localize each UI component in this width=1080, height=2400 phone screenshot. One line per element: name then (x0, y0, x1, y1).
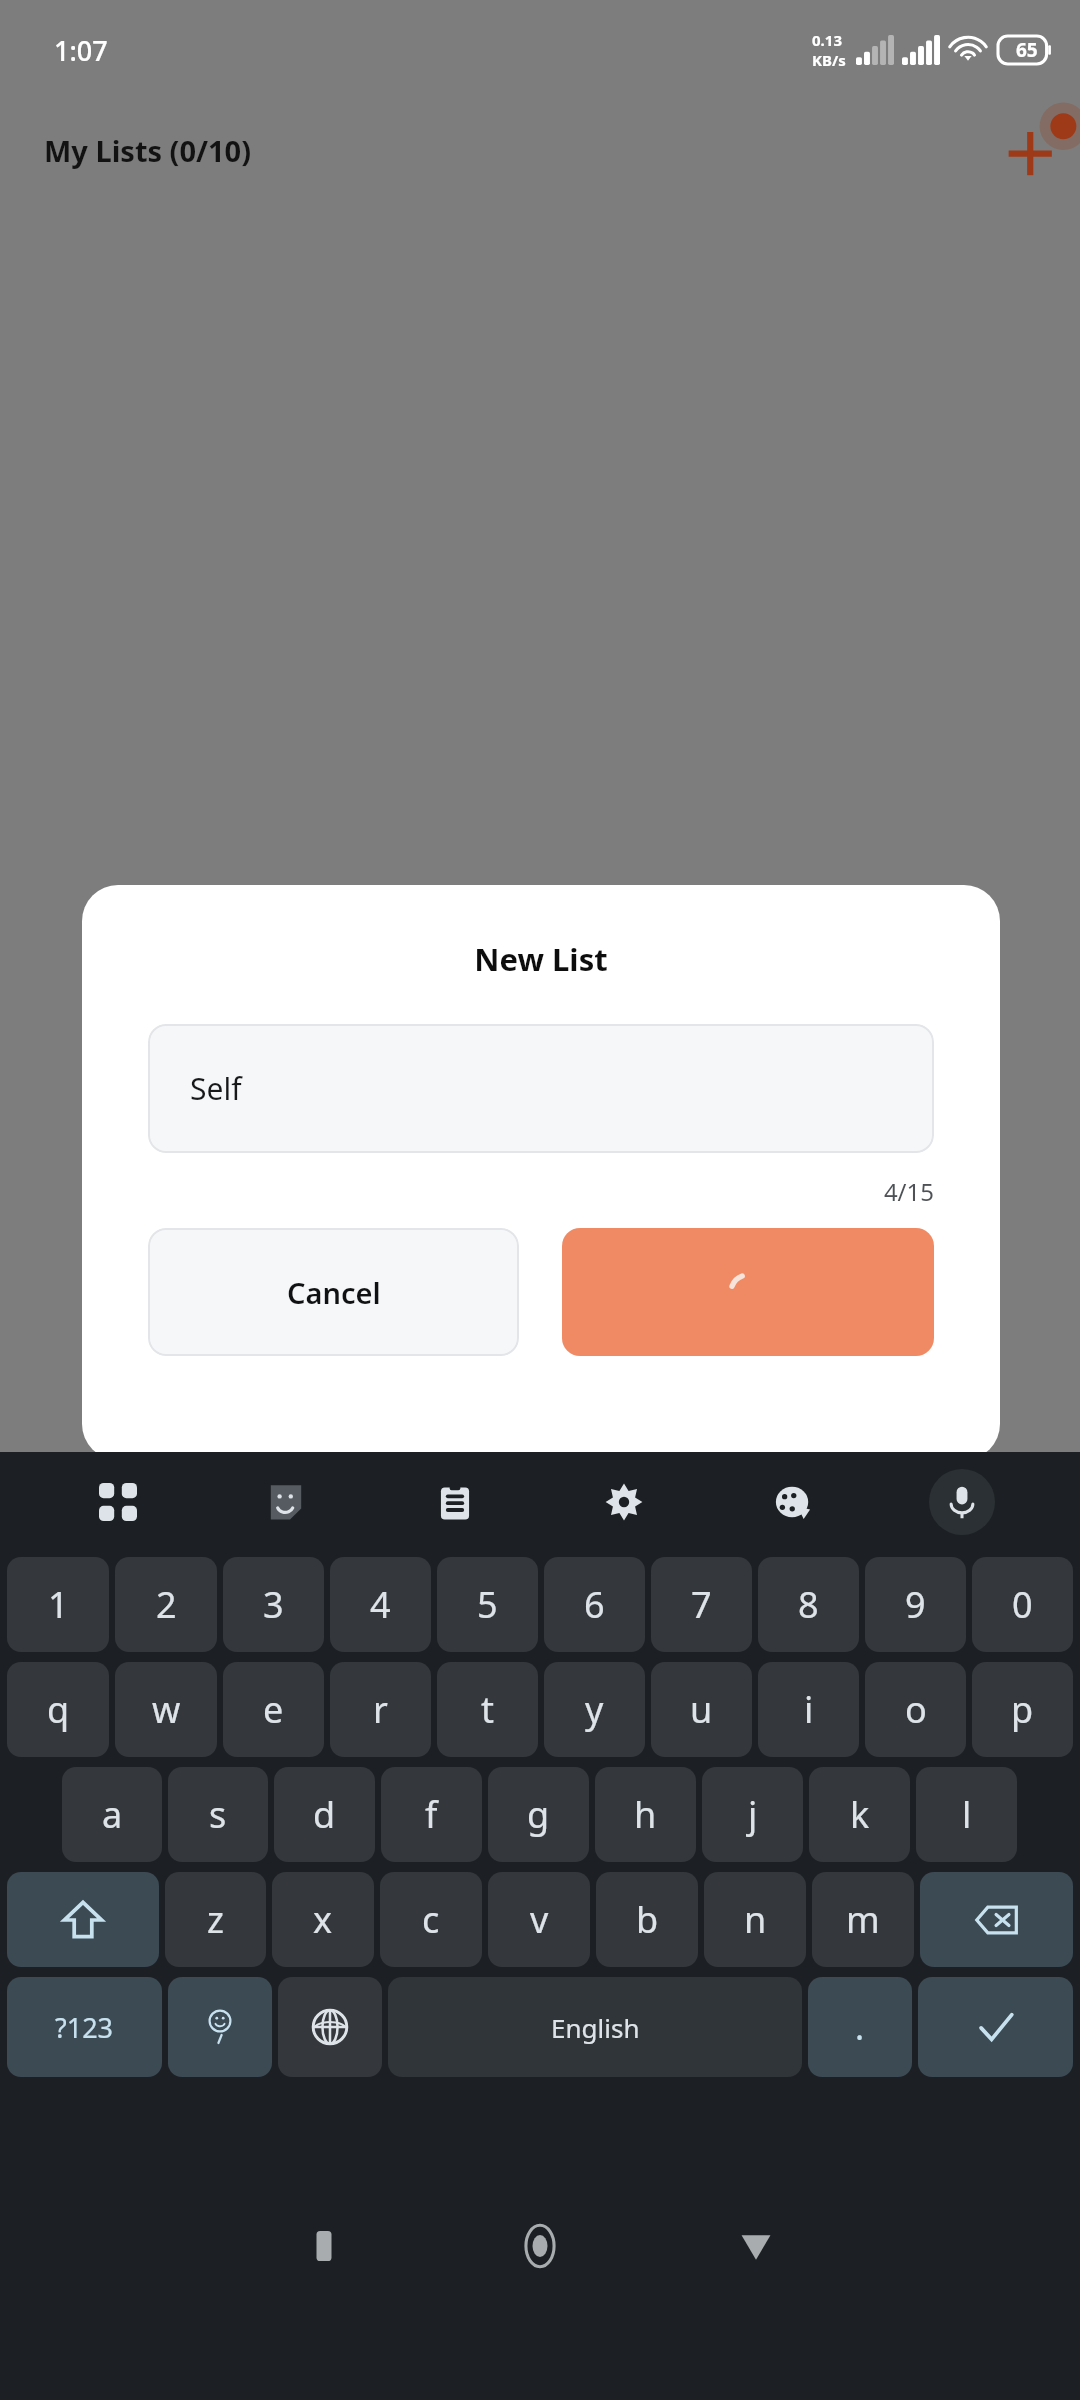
staticText: 0 (1012, 1580, 1033, 1629)
staticText: a (102, 1790, 123, 1839)
staticText: 4 (370, 1580, 391, 1629)
button[interactable]: l (916, 1767, 1017, 1862)
button[interactable]: o (865, 1662, 966, 1757)
button[interactable]: Recents (216, 2092, 432, 2400)
button[interactable]: 8 (758, 1557, 859, 1652)
staticText: e (263, 1685, 284, 1734)
button[interactable]: 9 (865, 1557, 966, 1652)
staticText: g (527, 1790, 550, 1839)
staticText: 7 (691, 1580, 712, 1629)
button[interactable]: 6 (544, 1557, 645, 1652)
staticText: n (744, 1895, 767, 1944)
button[interactable]: 2 (115, 1557, 217, 1652)
staticText: y (585, 1685, 604, 1734)
staticText: o (905, 1685, 927, 1734)
staticText: KB/s (812, 50, 846, 70)
staticText: 8 (798, 1580, 819, 1629)
button[interactable]: Language (278, 1977, 382, 2077)
button[interactable]: 3 (223, 1557, 324, 1652)
button[interactable]: Stickers (202, 1452, 370, 1552)
staticText: 5 (477, 1580, 498, 1629)
staticText: Self (190, 1068, 242, 1109)
staticText: Cancel (287, 1273, 381, 1312)
staticText: w (152, 1685, 181, 1734)
button[interactable]: j (702, 1767, 803, 1862)
staticText: p (1011, 1685, 1034, 1734)
staticText: 2 (156, 1580, 177, 1629)
staticText: 0.13 (812, 30, 842, 50)
button[interactable]: Themes (708, 1452, 877, 1552)
button[interactable]: i (758, 1662, 859, 1757)
button[interactable]: Back (648, 2092, 864, 2400)
staticText: ?123 (55, 2009, 114, 2046)
button[interactable]: r (330, 1662, 431, 1757)
button[interactable]: m (812, 1872, 914, 1967)
button[interactable]: 5 (437, 1557, 538, 1652)
button[interactable]: Create list (562, 1228, 934, 1356)
button[interactable]: Add list (1000, 114, 1072, 186)
staticText: l (962, 1790, 972, 1839)
button[interactable]: k (809, 1767, 910, 1862)
staticText: k (850, 1790, 870, 1839)
staticText: New List (82, 938, 1000, 980)
button[interactable]: b (596, 1872, 698, 1967)
button[interactable]: f (381, 1767, 482, 1862)
staticText: m (846, 1895, 880, 1944)
button[interactable]: x (272, 1872, 374, 1967)
button[interactable]: 0 (972, 1557, 1073, 1652)
button[interactable]: e (223, 1662, 324, 1757)
staticText: q (47, 1685, 70, 1734)
staticText: s (209, 1790, 227, 1839)
staticText: b (636, 1895, 659, 1944)
button[interactable]: English (388, 1977, 802, 2077)
staticText: v (530, 1895, 549, 1944)
staticText: 1:07 (54, 32, 108, 69)
button[interactable]: Apps (34, 1452, 202, 1552)
button[interactable]: h (595, 1767, 696, 1862)
button[interactable]: u (651, 1662, 752, 1757)
button[interactable]: 1 (7, 1557, 109, 1652)
staticText: English (551, 2010, 640, 2045)
button[interactable]: Shift (7, 1872, 159, 1967)
staticText: d (313, 1790, 336, 1839)
staticText: 65 (1016, 37, 1038, 63)
button[interactable]: s (168, 1767, 268, 1862)
button[interactable]: d (274, 1767, 375, 1862)
button[interactable]: a (62, 1767, 162, 1862)
staticText: 4/15 (82, 1175, 934, 1208)
button[interactable]: q (7, 1662, 109, 1757)
staticText: i (804, 1685, 814, 1734)
staticText: r (373, 1685, 388, 1734)
button[interactable]: ?123 (7, 1977, 162, 2077)
button[interactable]: t (437, 1662, 538, 1757)
staticText: 3 (263, 1580, 284, 1629)
button[interactable]: z (165, 1872, 266, 1967)
staticText: c (422, 1895, 440, 1944)
staticText: . (855, 2004, 865, 2050)
button[interactable]: Clipboard (370, 1452, 539, 1552)
button[interactable]: Self (148, 1024, 934, 1153)
button[interactable]: Voice input (929, 1469, 995, 1535)
button[interactable]: w (115, 1662, 217, 1757)
button[interactable]: p (972, 1662, 1073, 1757)
button[interactable]: g (488, 1767, 589, 1862)
button[interactable]: y (544, 1662, 645, 1757)
staticText: f (425, 1790, 438, 1839)
button[interactable]: c (380, 1872, 482, 1967)
button[interactable]: Enter (918, 1977, 1073, 2077)
staticText: My Lists (0/10) (44, 131, 252, 170)
button[interactable]: Backspace (920, 1872, 1073, 1967)
staticText: z (207, 1895, 224, 1944)
staticText: j (748, 1790, 758, 1839)
button[interactable]: Home (432, 2092, 648, 2400)
button[interactable]: 7 (651, 1557, 752, 1652)
button[interactable]: v (488, 1872, 590, 1967)
staticText: u (690, 1685, 713, 1734)
button[interactable]: n (704, 1872, 806, 1967)
button[interactable]: . (808, 1977, 912, 2077)
staticText: 1 (48, 1580, 69, 1629)
button[interactable]: 4 (330, 1557, 431, 1652)
button[interactable]: Cancel (148, 1228, 519, 1356)
button[interactable]: Settings (539, 1452, 708, 1552)
button[interactable]: Emoji (168, 1977, 272, 2077)
